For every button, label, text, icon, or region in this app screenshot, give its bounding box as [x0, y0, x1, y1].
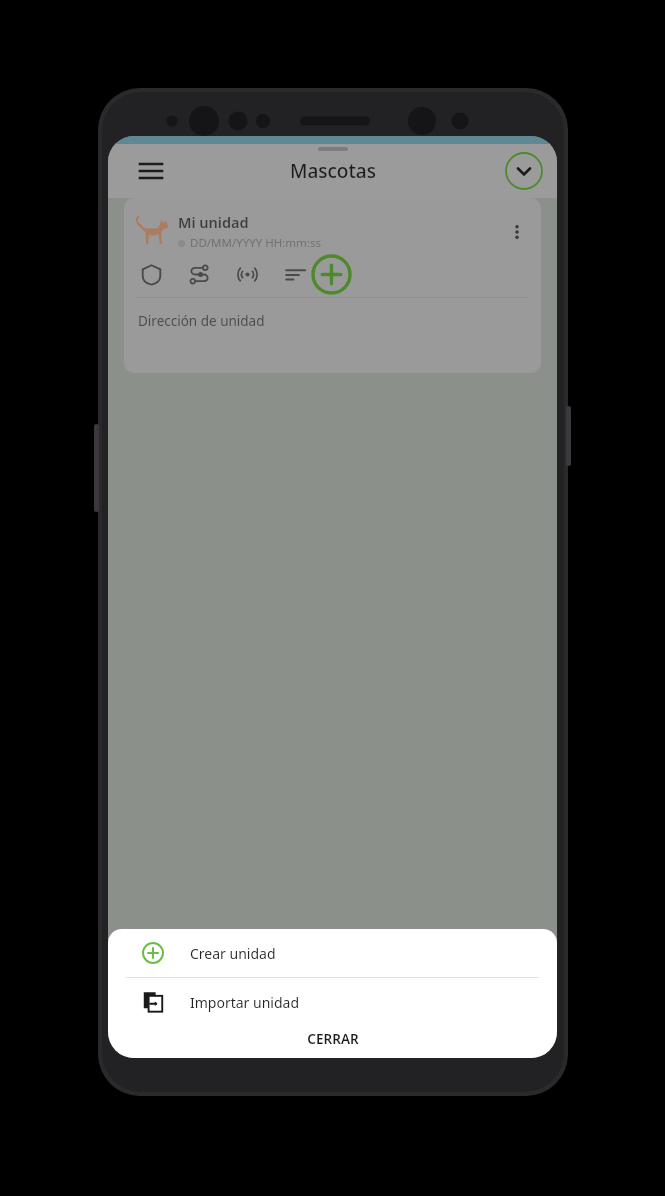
staticText: CERRAR: [307, 1030, 359, 1048]
button[interactable]: More options: [503, 218, 531, 246]
staticText: Importar unidad: [190, 993, 300, 1012]
staticText: Mi unidad: [178, 212, 249, 232]
staticText: DD/MM/YYYY HH:mm:ss: [190, 235, 321, 251]
button[interactable]: Importar unidad: [108, 978, 557, 1026]
button[interactable]: CERRAR: [108, 1026, 557, 1058]
button[interactable]: Add: [311, 254, 352, 295]
button[interactable]: Signal: [234, 261, 260, 287]
button[interactable]: Crear unidad: [108, 929, 557, 977]
button[interactable]: Expand: [505, 152, 543, 190]
button[interactable]: Mi unidad: [124, 198, 541, 373]
button[interactable]: Shield: [138, 261, 164, 287]
button[interactable]: Sort: [282, 261, 308, 287]
staticText: Crear unidad: [190, 944, 276, 963]
staticText: Mascotas: [290, 158, 376, 184]
staticText: Dirección de unidad: [138, 312, 265, 330]
button[interactable]: Menu: [130, 150, 172, 192]
button[interactable]: Route: [186, 261, 212, 287]
